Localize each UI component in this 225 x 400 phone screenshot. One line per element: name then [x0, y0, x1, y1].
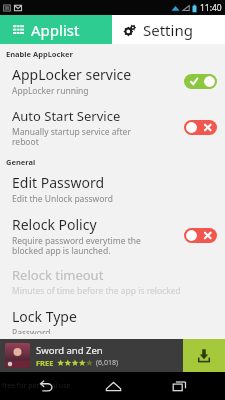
button[interactable]: Lock Type — [0, 302, 225, 339]
staticText: Minutes of time before the app is relock… — [12, 285, 217, 297]
staticText: Relock Policy — [12, 215, 97, 234]
button[interactable]: Install app — [183, 339, 225, 372]
button[interactable]: Setting — [112, 15, 225, 44]
staticText: Edit Password — [12, 173, 105, 192]
staticText: Enable AppLocker — [6, 49, 73, 59]
staticText: (6,018) — [96, 358, 119, 368]
staticText: Setting — [143, 20, 193, 40]
staticText: Password — [12, 327, 217, 334]
staticText: Auto Start Service — [12, 107, 121, 125]
staticText: Sword and Zen — [36, 344, 103, 357]
button[interactable]: Recent apps — [158, 372, 200, 400]
button[interactable]: Edit Password — [0, 168, 225, 210]
button[interactable]: Ad: Sword and Zen — [0, 339, 225, 372]
button[interactable]: Back — [25, 372, 67, 400]
staticText: General — [6, 157, 36, 167]
staticText: Manually startup service after reboot — [12, 126, 150, 147]
button[interactable]: Switch off — [184, 120, 217, 135]
staticText: AppLocker running — [12, 85, 150, 97]
button[interactable]: Auto Start Service — [0, 102, 225, 152]
staticText: 11:40 — [200, 2, 222, 14]
button[interactable]: Relock Policy — [0, 210, 225, 261]
staticText: free for personal use — [2, 381, 71, 391]
staticText: Lock Type — [12, 307, 77, 326]
button[interactable]: Relock timeout — [0, 261, 225, 302]
staticText: Require password everytime the blocked a… — [12, 235, 150, 256]
staticText: Edit the Unlock password — [12, 193, 217, 205]
button[interactable]: Switch off — [184, 228, 217, 243]
staticText: Relock timeout — [12, 266, 104, 284]
staticText: FREE — [36, 358, 54, 368]
button[interactable]: Home — [92, 372, 134, 400]
staticText: AppLocker service — [12, 65, 132, 84]
button[interactable]: Applist — [0, 15, 112, 44]
staticText: Applist — [31, 20, 80, 40]
button[interactable]: Switch on — [184, 74, 217, 89]
button[interactable]: AppLocker service — [0, 60, 225, 102]
